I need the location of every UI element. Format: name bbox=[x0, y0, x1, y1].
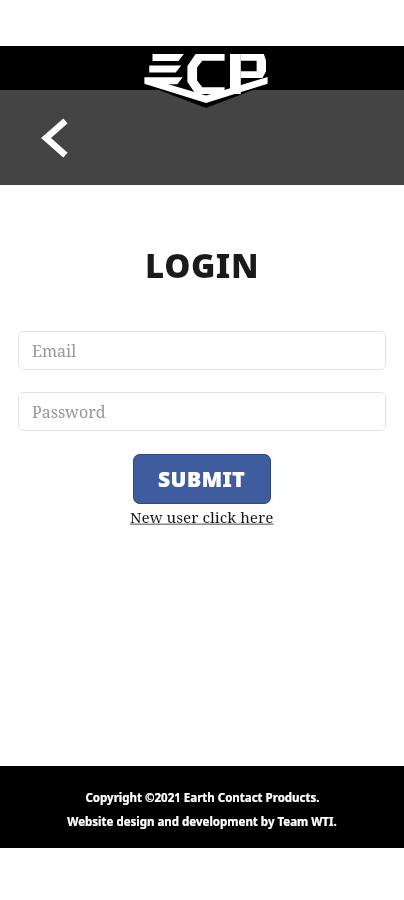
button[interactable]: SUBMIT bbox=[133, 454, 271, 504]
button[interactable]: Email bbox=[18, 331, 386, 370]
button[interactable]: Back bbox=[28, 112, 80, 164]
other: ECP logo bbox=[146, 54, 266, 94]
staticText: Email bbox=[32, 340, 77, 362]
staticText: Password bbox=[32, 401, 106, 423]
button[interactable]: New user click here bbox=[128, 506, 276, 528]
staticText: Website design and development by Team W… bbox=[67, 814, 337, 830]
button[interactable]: Password bbox=[18, 392, 386, 431]
staticText: New user click here bbox=[130, 507, 274, 527]
staticText: Copyright ©2021 Earth Contact Products. bbox=[85, 790, 320, 806]
staticText: LOGIN bbox=[145, 243, 259, 288]
staticText: SUBMIT bbox=[158, 465, 246, 494]
